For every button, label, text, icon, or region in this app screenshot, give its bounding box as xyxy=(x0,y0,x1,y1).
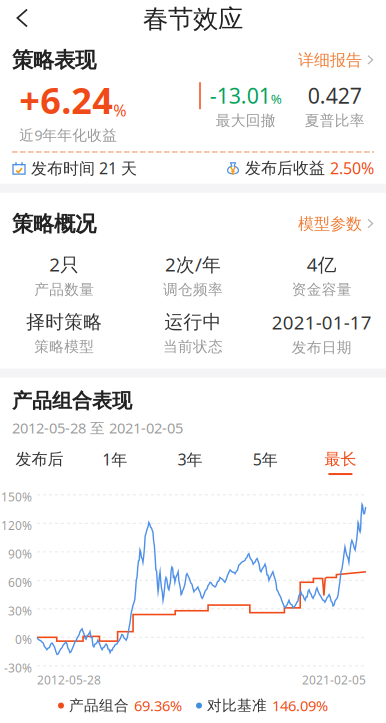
staticText: 2012-05-28 至 2021-02-05 xyxy=(12,418,183,438)
staticText: 策略模型 xyxy=(34,338,94,356)
staticText: 150% xyxy=(1,489,32,505)
staticText: 资金容量 xyxy=(292,281,352,299)
staticText: ¥ xyxy=(230,163,236,178)
staticText: 2.50% xyxy=(330,157,374,179)
staticText: 发布日期 xyxy=(292,338,352,356)
staticText: 2021-02-05 xyxy=(302,672,366,688)
button[interactable]: 1年 xyxy=(77,449,152,476)
staticText: 当前状态 xyxy=(163,338,223,356)
staticText: 0.427 xyxy=(308,81,362,109)
staticText: 3年 xyxy=(177,449,202,470)
staticText: 策略概况 xyxy=(12,211,96,237)
staticText: +6.24 xyxy=(19,76,113,124)
staticText: 产品组合表现 xyxy=(12,388,132,413)
staticText: 发布后收益 xyxy=(245,158,330,178)
staticText: % xyxy=(113,100,126,121)
button[interactable]: 模型参数 xyxy=(298,214,374,234)
staticText: 调仓频率 xyxy=(163,281,223,299)
staticText: 对比基准 xyxy=(207,697,267,715)
staticText: 120% xyxy=(1,517,32,533)
staticText: 2012-05-28 xyxy=(37,672,101,688)
staticText: 2次/年 xyxy=(165,252,221,277)
button[interactable]: 详细报告 xyxy=(298,50,374,70)
staticText: 详细报告 xyxy=(298,50,362,70)
staticText: % xyxy=(271,90,282,107)
staticText: 5年 xyxy=(253,449,278,470)
staticText: 0% xyxy=(15,631,32,647)
staticText: 最长 xyxy=(324,449,356,469)
staticText: 近9年年化收益 xyxy=(19,125,117,144)
staticText: 2021-01-17 xyxy=(272,310,372,334)
staticText: 夏普比率 xyxy=(305,111,365,129)
staticText: 发布时间 21 天 xyxy=(31,157,137,179)
staticText: 运行中 xyxy=(164,311,221,334)
staticText: 策略表现 xyxy=(12,47,96,73)
staticText: 1年 xyxy=(102,449,127,470)
staticText: 模型参数 xyxy=(298,214,362,234)
staticText: 春节效应 xyxy=(143,3,243,34)
staticText: 产品组合 xyxy=(69,697,129,715)
staticText: 146.09% xyxy=(272,696,328,715)
button[interactable]: 最长 xyxy=(303,449,378,475)
button[interactable]: 5年 xyxy=(228,449,303,476)
button[interactable]: 发布后 xyxy=(2,449,77,475)
staticText: 60% xyxy=(8,574,32,590)
button[interactable]: 返回 xyxy=(0,0,42,36)
staticText: 择时策略 xyxy=(26,311,102,334)
staticText: 69.36% xyxy=(134,696,182,715)
staticText: 2只 xyxy=(49,252,79,277)
staticText: 发布后 xyxy=(16,449,64,469)
button[interactable]: 3年 xyxy=(152,449,228,476)
staticText: 30% xyxy=(8,603,32,619)
staticText: 90% xyxy=(8,546,32,562)
staticText: 4亿 xyxy=(307,252,337,277)
staticText: -13.01 xyxy=(210,81,271,109)
staticText: -30% xyxy=(4,660,32,676)
staticText: 最大回撤 xyxy=(216,111,276,129)
staticText: 产品数量 xyxy=(34,281,94,299)
